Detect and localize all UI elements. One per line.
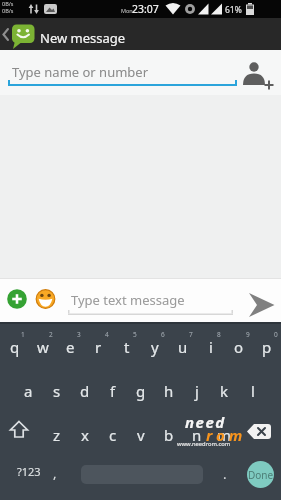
button[interactable]: ?123 [11, 456, 47, 486]
staticText: m [217, 425, 232, 445]
staticText: rom [206, 425, 247, 445]
button[interactable]: l [239, 375, 266, 407]
staticText: x [81, 425, 89, 445]
button[interactable]: Type name or number [0, 50, 281, 95]
staticText: Done [248, 468, 274, 482]
staticText: Type name or number [12, 63, 149, 81]
staticText: 4 [105, 330, 109, 339]
staticText: n [192, 425, 202, 445]
button[interactable]: y [141, 331, 168, 363]
staticText: g [136, 381, 146, 401]
staticText: 61% [225, 4, 242, 16]
button[interactable] [244, 422, 276, 442]
staticText: v [137, 425, 145, 445]
button[interactable]: Done [247, 461, 274, 488]
staticText: u [178, 337, 188, 357]
staticText: 2 [49, 330, 53, 339]
staticText: 0 [274, 330, 278, 339]
button[interactable]: b [155, 419, 182, 451]
staticText: 23:07 [132, 2, 159, 16]
staticText: , [53, 464, 57, 482]
button[interactable]: j [183, 375, 210, 407]
button[interactable]: v [127, 419, 154, 451]
staticText: t [124, 337, 130, 357]
staticText: New message [40, 29, 126, 47]
staticText: d [80, 381, 90, 401]
staticText: 7 [189, 330, 193, 339]
staticText: ?123 [17, 464, 41, 479]
staticText: need [185, 412, 226, 432]
button[interactable] [0, 18, 38, 50]
button[interactable] [245, 290, 277, 316]
button[interactable]: q [1, 331, 28, 363]
button[interactable]: z [43, 419, 70, 451]
button[interactable]: m [211, 419, 238, 451]
staticText: j [195, 381, 199, 401]
staticText: r [95, 337, 102, 357]
button[interactable] [36, 289, 56, 309]
button[interactable] [6, 288, 28, 310]
staticText: s [53, 381, 61, 401]
button[interactable]: k [211, 375, 238, 407]
staticText: w [37, 337, 49, 357]
button[interactable]: f [99, 375, 126, 407]
button[interactable] [0, 418, 42, 450]
staticText: b [164, 425, 174, 445]
staticText: z [53, 425, 61, 445]
button[interactable]: c [99, 419, 126, 451]
button[interactable]: r [85, 331, 112, 363]
staticText: Type text message [71, 291, 185, 309]
staticText: 5 [133, 330, 137, 339]
button[interactable]: o [225, 331, 252, 363]
button[interactable]: p [253, 331, 280, 363]
staticText: a [24, 381, 33, 401]
button[interactable]: i [197, 331, 224, 363]
button[interactable]: . [215, 459, 235, 489]
button[interactable] [241, 60, 275, 92]
button[interactable]: h [155, 375, 182, 407]
button[interactable]: , [45, 458, 65, 488]
button[interactable]: a [15, 375, 42, 407]
staticText: o [234, 337, 244, 357]
staticText: 6 [161, 330, 165, 339]
staticText: 0B/s [2, 0, 14, 7]
staticText: i [209, 337, 213, 357]
staticText: y [151, 337, 159, 357]
button[interactable]: n [183, 419, 210, 451]
staticText: 0B/s [2, 7, 14, 14]
staticText: www.needrom.com [177, 440, 231, 448]
button[interactable]: d [71, 375, 98, 407]
staticText: l [251, 381, 255, 401]
staticText: 9 [246, 330, 250, 339]
button[interactable]: g [127, 375, 154, 407]
staticText: h [164, 381, 174, 401]
staticText: p [262, 337, 272, 357]
staticText: c [109, 425, 117, 445]
staticText: . [223, 465, 227, 483]
staticText: q [10, 337, 20, 357]
staticText: 3 [77, 330, 81, 339]
button[interactable]: x [71, 419, 98, 451]
staticText: f [110, 381, 116, 401]
button[interactable]: t [113, 331, 140, 363]
button[interactable]: u [169, 331, 196, 363]
staticText: k [220, 381, 229, 401]
button[interactable]: e [57, 331, 84, 363]
button[interactable]: w [29, 331, 56, 363]
staticText: 1 [21, 330, 25, 339]
button[interactable]: s [43, 375, 70, 407]
staticText: Mon [121, 7, 133, 14]
staticText: 8 [217, 330, 221, 339]
staticText: e [66, 337, 75, 357]
